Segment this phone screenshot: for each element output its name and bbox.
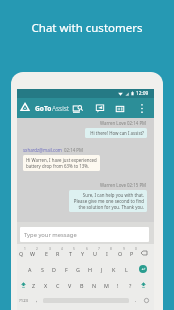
staticText: Z: [32, 282, 36, 289]
staticText: !: [117, 282, 119, 289]
button[interactable]: .: [131, 296, 141, 305]
staticText: S: [41, 266, 44, 273]
staticText: I: [106, 250, 108, 257]
button[interactable]: J: [96, 261, 108, 277]
button[interactable]: Shift: [137, 277, 149, 293]
button[interactable]: P: [126, 245, 138, 261]
staticText: Assist: [52, 104, 70, 113]
staticText: Hi Warren, I have just experienced batte…: [26, 157, 97, 169]
staticText: M: [104, 282, 109, 289]
staticText: 02:14 PM: [64, 147, 84, 153]
staticText: Sure, I can help you with that. Please g…: [72, 192, 144, 210]
staticText: 6: [86, 247, 88, 251]
staticText: Warren Love 02:14 PM: [100, 120, 147, 126]
staticText: ?: [129, 282, 132, 289]
staticText: 2: [36, 247, 38, 251]
staticText: GoTo: [35, 104, 52, 113]
button[interactable]: W: [27, 245, 39, 261]
staticText: Q: [19, 250, 24, 257]
button[interactable]: Chat: [94, 103, 106, 114]
staticText: U: [93, 250, 97, 257]
staticText: V: [68, 282, 72, 289]
staticText: H: [88, 266, 92, 273]
staticText: K: [112, 266, 116, 273]
staticText: sxhardz@mail.com: [23, 147, 62, 153]
staticText: D: [52, 266, 56, 273]
staticText: L: [125, 266, 128, 273]
staticText: O: [118, 250, 123, 257]
staticText: X: [44, 282, 48, 289]
button[interactable]: Backspace: [138, 245, 150, 261]
button[interactable]: R: [52, 245, 64, 261]
button[interactable]: N: [88, 277, 100, 293]
staticText: 8: [110, 247, 112, 251]
button[interactable]: H: [84, 261, 96, 277]
staticText: E: [45, 250, 48, 257]
staticText: C: [56, 282, 60, 289]
staticText: 7: [98, 247, 100, 251]
button[interactable]: Z: [28, 277, 40, 293]
staticText: P: [130, 250, 134, 257]
staticText: B: [80, 282, 84, 289]
staticText: Type your message: [24, 231, 77, 239]
staticText: 4: [61, 247, 63, 251]
button[interactable]: Screen share: [72, 103, 84, 114]
button[interactable]: T: [64, 245, 76, 261]
button[interactable]: I: [101, 245, 113, 261]
button[interactable]: G: [72, 261, 84, 277]
button[interactable]: C: [52, 277, 64, 293]
staticText: 0: [135, 247, 137, 251]
button[interactable]: S: [36, 261, 48, 277]
button[interactable]: Y: [77, 245, 89, 261]
staticText: T: [69, 250, 72, 257]
button[interactable]: O: [114, 245, 126, 261]
staticText: J: [101, 266, 103, 273]
button[interactable]: Emoji: [141, 296, 151, 305]
button[interactable]: A: [24, 261, 36, 277]
button[interactable]: F: [60, 261, 72, 277]
button[interactable]: ,: [32, 296, 42, 305]
staticText: Warren Love 02:15 PM: [100, 182, 147, 188]
staticText: W: [30, 250, 36, 257]
button[interactable]: D: [48, 261, 60, 277]
button[interactable]: E: [40, 245, 52, 261]
button[interactable]: Type your message: [20, 227, 149, 242]
button[interactable]: Shift: [17, 277, 29, 293]
button[interactable]: ?: [124, 277, 136, 293]
staticText: 1: [24, 247, 26, 251]
button[interactable]: V: [64, 277, 76, 293]
button[interactable]: U: [89, 245, 101, 261]
button[interactable]: Q: [15, 245, 27, 261]
staticText: 3: [49, 247, 51, 251]
staticText: Hi there! How can I assist?: [88, 130, 144, 136]
button[interactable]: K: [108, 261, 120, 277]
staticText: G: [76, 266, 80, 273]
staticText: 9: [123, 247, 125, 251]
staticText: N: [92, 282, 97, 289]
button[interactable]: Session: [114, 103, 126, 114]
button[interactable]: M: [100, 277, 112, 293]
staticText: Chat with customers: [0, 20, 174, 36]
button[interactable]: B: [76, 277, 88, 293]
button[interactable]: !: [112, 277, 124, 293]
staticText: F: [65, 266, 68, 273]
staticText: Y: [81, 250, 85, 257]
staticText: A: [28, 266, 32, 273]
button[interactable]: ?123: [17, 296, 31, 305]
staticText: R: [56, 250, 60, 257]
staticText: 12:09: [136, 90, 149, 97]
staticText: ,: [36, 297, 38, 304]
button[interactable]: More options: [136, 102, 148, 114]
button[interactable]: L: [120, 261, 132, 277]
staticText: .: [135, 297, 137, 304]
button[interactable]: Enter: [137, 261, 149, 277]
staticText: ?123: [19, 298, 29, 304]
staticText: 5: [73, 247, 75, 251]
button[interactable]: X: [40, 277, 52, 293]
